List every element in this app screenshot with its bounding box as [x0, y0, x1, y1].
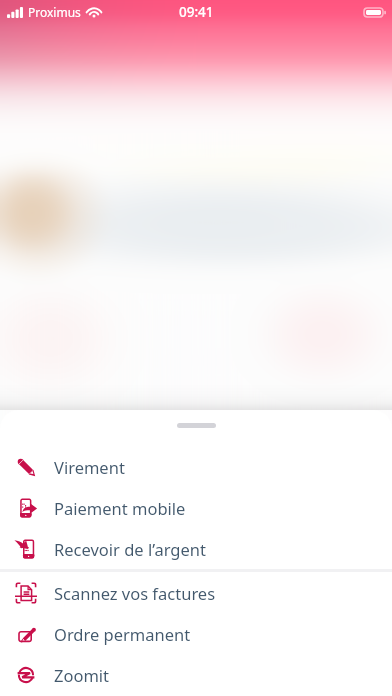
staticText: 09:41 — [179, 3, 214, 21]
button[interactable]: Scannez vos factures — [0, 572, 392, 613]
button[interactable]: Zoomit — [0, 654, 392, 695]
button[interactable]: Ordre permanent — [0, 613, 392, 654]
staticText: Scannez vos factures — [54, 582, 216, 604]
button[interactable]: Virement — [0, 446, 392, 487]
staticText: Ordre permanent — [54, 623, 191, 645]
staticText: Proximus — [28, 4, 81, 20]
staticText: Zoomit — [54, 664, 110, 686]
staticText: Virement — [54, 456, 125, 478]
staticText: Recevoir de l’argent — [54, 538, 206, 560]
staticText: Paiement mobile — [54, 497, 186, 519]
button[interactable]: Recevoir de l’argent — [0, 528, 392, 569]
button[interactable]: Paiement mobile — [0, 487, 392, 528]
